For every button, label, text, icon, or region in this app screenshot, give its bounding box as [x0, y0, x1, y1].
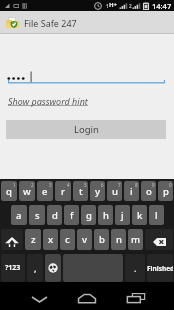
button[interactable]: g: [81, 205, 96, 225]
staticText: a: [16, 209, 22, 222]
button[interactable]: a: [11, 205, 27, 225]
button[interactable]: z: [25, 229, 41, 250]
button[interactable]: k: [132, 205, 147, 225]
staticText: t: [79, 185, 83, 198]
button[interactable]: c: [60, 229, 75, 250]
staticText: 7: [118, 182, 121, 188]
button[interactable]: Login: [6, 120, 166, 139]
staticText: 5: [84, 182, 87, 188]
staticText: 8: [135, 182, 138, 188]
button[interactable]: j: [115, 205, 130, 225]
staticText: w: [23, 185, 31, 198]
button[interactable]: m: [128, 229, 143, 250]
button[interactable]: p: [158, 181, 173, 201]
staticText: e: [42, 185, 48, 198]
button[interactable]: .: [125, 254, 145, 282]
staticText: d: [52, 209, 58, 222]
staticText: 4: [67, 182, 70, 188]
staticText: ,: [34, 262, 37, 274]
staticText: j: [121, 209, 124, 222]
button[interactable]: y: [90, 181, 105, 201]
staticText: Login: [74, 123, 99, 136]
staticText: x: [48, 233, 54, 246]
staticText: Finished: [147, 264, 173, 273]
button[interactable]: ,: [27, 254, 43, 282]
staticText: 14:47: [152, 1, 172, 11]
staticText: i: [130, 185, 133, 198]
button[interactable]: d: [47, 205, 62, 225]
staticText: File Safe 247: [24, 17, 77, 29]
button[interactable]: e: [37, 181, 53, 201]
staticText: m: [131, 233, 140, 246]
staticText: 1: [106, 3, 109, 9]
button[interactable]: f: [64, 205, 79, 225]
staticText: n: [116, 233, 122, 246]
staticText: 3: [49, 182, 52, 188]
staticText: 9: [152, 182, 155, 188]
button[interactable]: [8, 34, 165, 83]
button[interactable]: u: [107, 181, 122, 201]
staticText: 1: [13, 182, 16, 188]
button[interactable]: q: [1, 181, 17, 201]
button[interactable]: Finished: [147, 254, 173, 282]
staticText: k: [137, 209, 143, 222]
button[interactable]: w: [19, 181, 35, 201]
staticText: z: [31, 233, 36, 246]
button[interactable]: r: [55, 181, 71, 201]
staticText: l: [155, 209, 158, 222]
button[interactable]: v: [77, 229, 92, 250]
button[interactable]: t: [73, 181, 88, 201]
button[interactable]: s: [29, 205, 45, 225]
staticText: ?123: [5, 263, 21, 273]
button[interactable]: o: [141, 181, 156, 201]
staticText: b: [99, 233, 105, 246]
button[interactable]: Backspace: [145, 229, 173, 250]
staticText: r: [61, 185, 66, 198]
staticText: o: [146, 185, 152, 198]
button[interactable]: h: [98, 205, 113, 225]
button[interactable]: Hide keyboard: [22, 284, 56, 306]
staticText: 2: [129, 3, 132, 9]
staticText: u: [112, 185, 118, 198]
button[interactable]: i: [124, 181, 139, 201]
staticText: 0: [169, 182, 172, 188]
staticText: s: [35, 209, 40, 222]
staticText: .: [134, 262, 137, 274]
staticText: Show password hint: [8, 95, 88, 107]
staticText: 2: [31, 182, 34, 188]
button[interactable]: n: [111, 229, 126, 250]
button[interactable]: x: [43, 229, 58, 250]
staticText: f: [70, 209, 74, 222]
button[interactable]: Recent apps: [119, 284, 153, 306]
button[interactable]: Shift: [1, 229, 23, 250]
button[interactable]: Show password hint: [8, 95, 88, 107]
staticText: g: [86, 209, 92, 222]
staticText: H+: [109, 1, 118, 9]
staticText: v: [82, 233, 88, 246]
button[interactable]: b: [94, 229, 109, 250]
staticText: 6: [101, 182, 104, 188]
staticText: h: [103, 209, 109, 222]
staticText: q: [6, 185, 12, 198]
button[interactable]: Change language: [45, 254, 61, 282]
staticText: y: [95, 185, 101, 198]
staticText: p: [163, 185, 169, 198]
button[interactable]: Home: [70, 284, 104, 306]
button[interactable]: ?123: [1, 254, 25, 282]
button[interactable]: l: [149, 205, 164, 225]
staticText: c: [65, 233, 70, 246]
